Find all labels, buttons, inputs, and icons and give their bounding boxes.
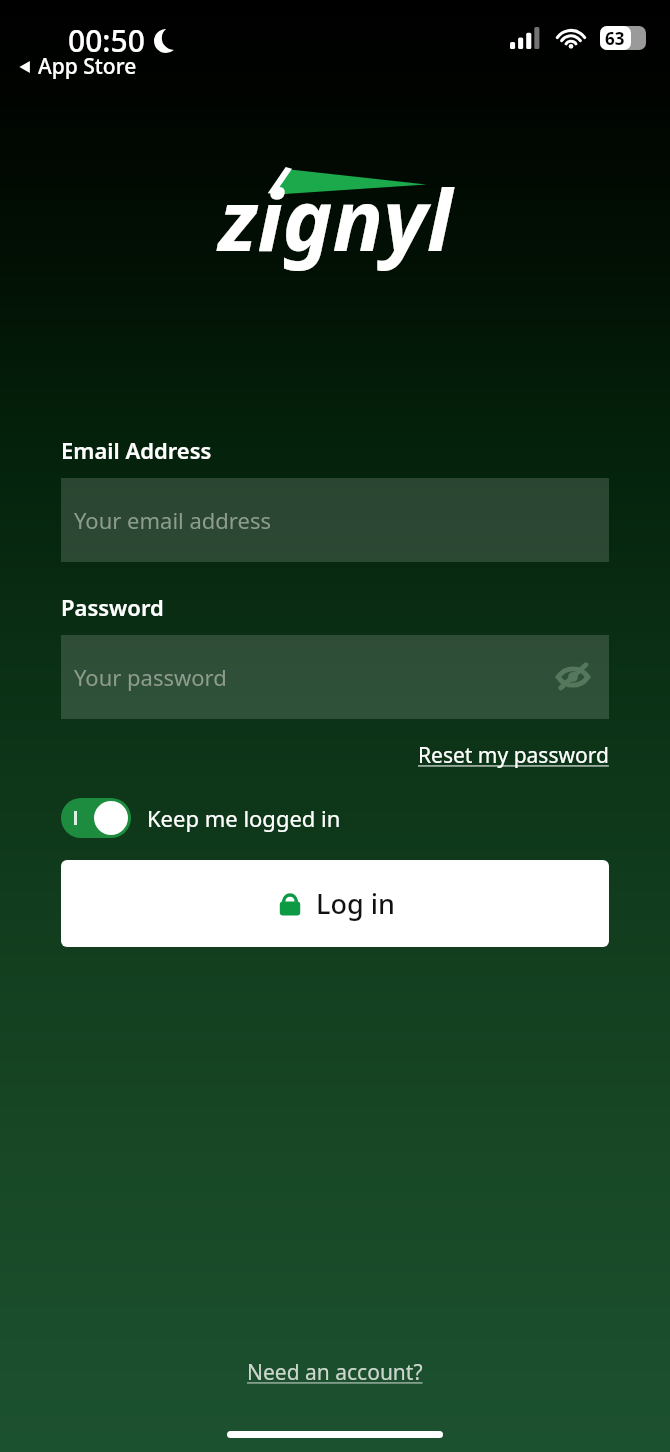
staticText: Your password (74, 662, 550, 692)
button[interactable]: Log in (61, 860, 609, 947)
staticText: Password (61, 592, 164, 622)
button[interactable]: Reset my password (418, 737, 609, 774)
staticText: App Store (38, 52, 137, 81)
button[interactable]: App Store (18, 52, 137, 81)
button[interactable]: Show password (550, 654, 596, 700)
staticText: Keep me logged in (147, 803, 341, 833)
staticText: Reset my password (418, 741, 609, 770)
button[interactable]: Keep me logged in toggle (61, 798, 131, 838)
button[interactable]: Need an account? (239, 1352, 431, 1393)
button[interactable]: Your email address (61, 478, 609, 562)
staticText: Need an account? (247, 1358, 423, 1387)
staticText: zignyl (218, 161, 453, 275)
staticText: 00:50 (68, 20, 145, 61)
staticText: Log in (316, 885, 395, 922)
staticText: Email Address (61, 435, 212, 465)
staticText: 63 (605, 27, 625, 50)
button[interactable]: Keep me logged in toggle (61, 794, 341, 842)
button[interactable]: Your password (61, 635, 609, 719)
staticText: Your email address (74, 505, 596, 535)
